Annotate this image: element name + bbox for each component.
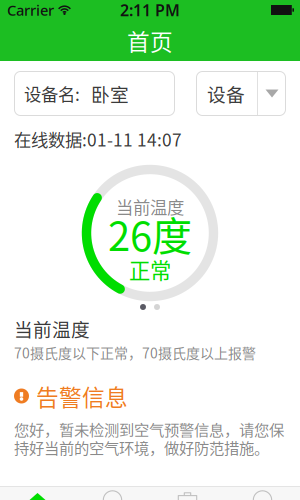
staticText: 卧室 [91,80,129,107]
button[interactable]: 设备 [75,486,150,500]
button[interactable]: 首页 [0,486,75,500]
staticText: 告警信息 [36,380,128,412]
button[interactable]: 设备 [196,71,286,116]
staticText: Carrier [7,0,54,20]
staticText: 26度 [108,204,192,262]
staticText: 设备 [207,80,245,107]
staticText: 设备名: [24,81,80,106]
staticText: 当前温度 [116,194,184,219]
staticText: 您好，暂未检测到空气预警信息，请您保持好当前的空气环境，做好防范措施。 [14,418,284,458]
staticText: 2:11 PM [120,0,180,21]
staticText: 正常 [129,254,171,285]
button[interactable]: 我的 [225,486,300,500]
staticText: 当前温度 [14,315,90,342]
staticText: 首页 [127,24,173,57]
staticText: 70摄氏度以下正常，70摄氏度以上报警 [14,342,256,363]
button[interactable]: 设备名: [14,71,175,116]
staticText: 在线数据:01-11 14:07 [14,126,182,152]
button[interactable]: 商城 [150,486,225,500]
